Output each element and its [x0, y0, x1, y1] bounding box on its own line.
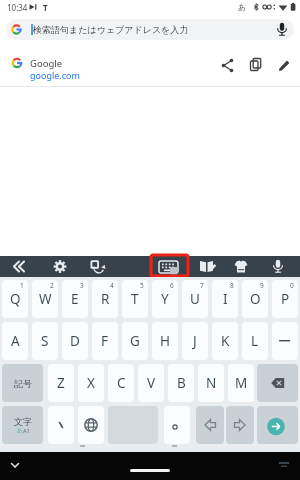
- button[interactable]: [257, 364, 298, 402]
- staticText: あ: [238, 2, 247, 12]
- staticText: N: [206, 374, 217, 392]
- staticText: 1: [20, 281, 24, 290]
- button[interactable]: O: [242, 280, 268, 318]
- button[interactable]: [48, 406, 74, 444]
- button[interactable]: A: [2, 322, 28, 360]
- staticText: 文字: [14, 416, 32, 427]
- button[interactable]: [257, 406, 298, 444]
- staticText: O: [250, 290, 261, 308]
- staticText: B: [177, 374, 186, 392]
- staticText: X: [87, 374, 95, 392]
- staticText: V: [147, 374, 156, 392]
- staticText: 4: [110, 281, 114, 290]
- staticText: 7: [200, 281, 204, 290]
- staticText: あ: [17, 427, 23, 434]
- button[interactable]: I: [212, 280, 238, 318]
- staticText: ー: [278, 333, 292, 350]
- button[interactable]: 記号: [2, 364, 43, 402]
- staticText: R: [101, 290, 110, 308]
- staticText: E: [71, 290, 79, 308]
- staticText: 5: [140, 281, 144, 290]
- staticText: D: [70, 332, 80, 350]
- staticText: F: [101, 332, 109, 350]
- staticText: 8: [230, 281, 234, 290]
- button[interactable]: S: [32, 322, 58, 360]
- button[interactable]: F: [92, 322, 118, 360]
- button[interactable]: C: [108, 364, 134, 402]
- staticText: 9: [260, 281, 264, 290]
- staticText: W: [39, 290, 52, 308]
- button[interactable]: R: [92, 280, 118, 318]
- button[interactable]: Z: [48, 364, 74, 402]
- button[interactable]: Google: [0, 48, 300, 86]
- button[interactable]: [80, 256, 120, 277]
- staticText: A: [11, 332, 20, 350]
- button[interactable]: P: [272, 280, 298, 318]
- staticText: S: [41, 332, 49, 350]
- button[interactable]: [148, 256, 187, 277]
- staticText: 検索語句またはウェブアドレスを入力: [33, 24, 189, 35]
- staticText: Y: [161, 290, 169, 308]
- button[interactable]: W: [32, 280, 58, 318]
- staticText: 2: [50, 281, 54, 290]
- button[interactable]: [187, 256, 225, 277]
- staticText: C: [117, 374, 126, 392]
- staticText: T: [43, 2, 48, 13]
- button[interactable]: Y: [152, 280, 178, 318]
- staticText: 6: [170, 281, 174, 290]
- button[interactable]: Q: [2, 280, 28, 318]
- staticText: I: [223, 290, 228, 308]
- staticText: A1: [23, 427, 30, 434]
- button[interactable]: X: [78, 364, 104, 402]
- button[interactable]: B: [168, 364, 194, 402]
- button[interactable]: [78, 406, 104, 444]
- staticText: P: [281, 290, 290, 308]
- button[interactable]: [196, 406, 224, 444]
- button[interactable]: 検索語句またはウェブアドレスを入力: [6, 19, 294, 40]
- button[interactable]: V: [138, 364, 164, 402]
- button[interactable]: L: [242, 322, 268, 360]
- button[interactable]: [225, 256, 263, 277]
- button[interactable]: H: [152, 322, 178, 360]
- button[interactable]: M: [228, 364, 254, 402]
- button[interactable]: K: [212, 322, 238, 360]
- button[interactable]: ー: [272, 322, 298, 360]
- button[interactable]: [263, 256, 300, 277]
- staticText: U: [190, 290, 200, 308]
- staticText: 0: [290, 281, 294, 290]
- staticText: M: [235, 374, 248, 392]
- button[interactable]: [164, 406, 190, 444]
- staticText: 3: [80, 281, 84, 290]
- staticText: google.com: [30, 69, 80, 81]
- staticText: G: [130, 332, 140, 350]
- staticText: J: [193, 332, 197, 350]
- button[interactable]: T: [122, 280, 148, 318]
- staticText: Q: [10, 290, 21, 308]
- staticText: Z: [57, 374, 65, 392]
- staticText: Google: [30, 57, 63, 70]
- button[interactable]: U: [182, 280, 208, 318]
- button[interactable]: 文字: [2, 406, 43, 444]
- staticText: T: [131, 290, 139, 308]
- button[interactable]: D: [62, 322, 88, 360]
- button[interactable]: E: [62, 280, 88, 318]
- staticText: L: [251, 332, 259, 350]
- staticText: K: [221, 332, 230, 350]
- button[interactable]: [40, 256, 80, 277]
- staticText: 10:34: [7, 2, 28, 13]
- staticText: H: [160, 332, 171, 350]
- button[interactable]: N: [198, 364, 224, 402]
- button[interactable]: G: [122, 322, 148, 360]
- button[interactable]: J: [182, 322, 208, 360]
- button[interactable]: [0, 256, 40, 277]
- button[interactable]: [226, 406, 254, 444]
- staticText: 記号: [14, 378, 32, 389]
